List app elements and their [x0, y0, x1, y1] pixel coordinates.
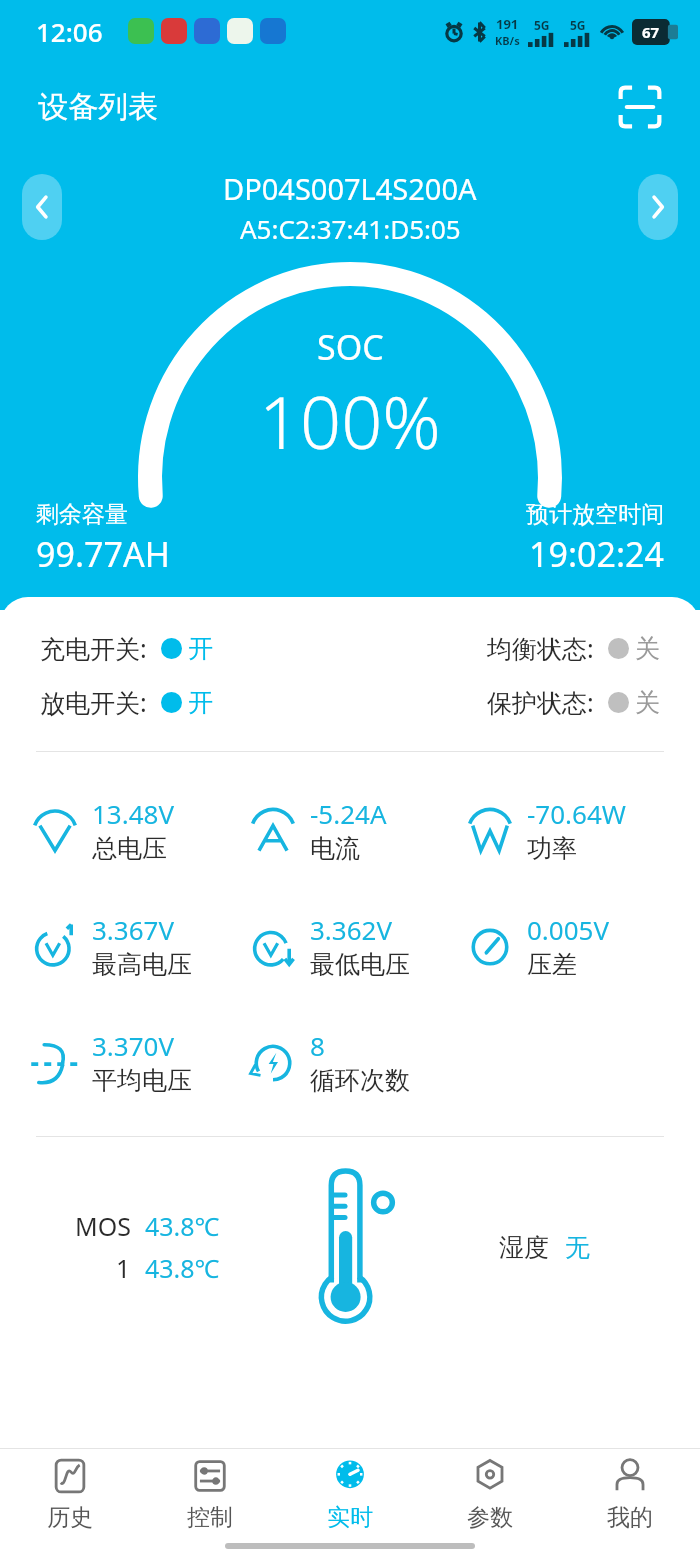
button[interactable]: Previous device [22, 174, 62, 240]
staticText: 0.005V [527, 912, 610, 947]
staticText: 最低电压 [310, 949, 410, 980]
button[interactable]: 控制 [140, 1449, 280, 1537]
button[interactable]: 参数 [420, 1449, 560, 1537]
staticText: 5G [534, 17, 550, 33]
staticText: 总电压 [92, 833, 167, 864]
staticText: 压差 [527, 949, 577, 980]
staticText: 充电开关: [40, 631, 147, 665]
staticText: 控制 [187, 1503, 233, 1532]
staticText: 19:02:24 [529, 531, 664, 577]
staticText: -5.24A [310, 796, 387, 831]
staticText: 3.367V [92, 912, 175, 947]
button[interactable]: 3.362V [246, 912, 463, 980]
staticText: 参数 [467, 1503, 513, 1532]
staticText: 关 [635, 687, 660, 718]
staticText: 43.8℃ [145, 1209, 220, 1243]
staticText: MOS [75, 1209, 131, 1243]
staticText: 191 [496, 15, 519, 33]
button[interactable]: 历史 [0, 1449, 140, 1537]
button[interactable]: 设备列表 [38, 88, 158, 126]
button[interactable]: -5.24A [246, 796, 463, 864]
staticText: 3.370V [92, 1028, 175, 1063]
button[interactable]: 实时 [280, 1449, 420, 1537]
staticText: 最高电压 [92, 949, 192, 980]
staticText: 12:06 [36, 14, 103, 49]
button[interactable]: Scan [612, 79, 668, 135]
button[interactable]: Next device [638, 174, 678, 240]
staticText: 平均电压 [92, 1065, 192, 1096]
staticText: 电流 [310, 833, 360, 864]
staticText: 8 [310, 1028, 325, 1063]
staticText: 无 [565, 1232, 590, 1263]
button[interactable]: 0.005V [463, 912, 680, 980]
button[interactable]: 保护状态: [350, 685, 660, 719]
staticText: 我的 [607, 1503, 653, 1532]
button[interactable]: 我的 [560, 1449, 700, 1537]
staticText: 保护状态: [487, 685, 594, 719]
staticText: 67 [642, 22, 660, 42]
button[interactable]: -70.64W [463, 796, 680, 864]
staticText: 99.77AH [36, 531, 170, 577]
button[interactable]: 8 [246, 1028, 463, 1096]
staticText: 开 [188, 687, 213, 718]
button[interactable]: 放电开关: [40, 685, 350, 719]
staticText: 湿度 [499, 1232, 549, 1263]
button[interactable]: 3.370V [28, 1028, 246, 1096]
staticText: 开 [188, 633, 213, 664]
staticText: 剩余容量 [36, 500, 128, 529]
staticText: 100% [259, 372, 441, 470]
staticText: SOC [317, 324, 384, 370]
button[interactable]: 3.367V [28, 912, 246, 980]
staticText: A5:C2:37:41:D5:05 [240, 211, 461, 246]
staticText: -70.64W [527, 796, 627, 831]
button[interactable]: 13.48V [28, 796, 246, 864]
staticText: 循环次数 [310, 1065, 410, 1096]
staticText: 功率 [527, 833, 577, 864]
staticText: 历史 [47, 1503, 93, 1532]
button[interactable]: 充电开关: [40, 631, 350, 665]
staticText: 5G [570, 17, 586, 33]
staticText: 放电开关: [40, 685, 147, 719]
staticText: 预计放空时间 [526, 500, 664, 529]
staticText: 1 [116, 1251, 131, 1285]
button[interactable]: 均衡状态: [350, 631, 660, 665]
staticText: 关 [635, 633, 660, 664]
staticText: 均衡状态: [487, 631, 594, 665]
staticText: KB/s [495, 33, 520, 48]
staticText: DP04S007L4S200A [223, 169, 477, 208]
staticText: 13.48V [92, 796, 175, 831]
staticText: 43.8℃ [145, 1251, 220, 1285]
staticText: 实时 [327, 1503, 373, 1532]
staticText: 3.362V [310, 912, 393, 947]
